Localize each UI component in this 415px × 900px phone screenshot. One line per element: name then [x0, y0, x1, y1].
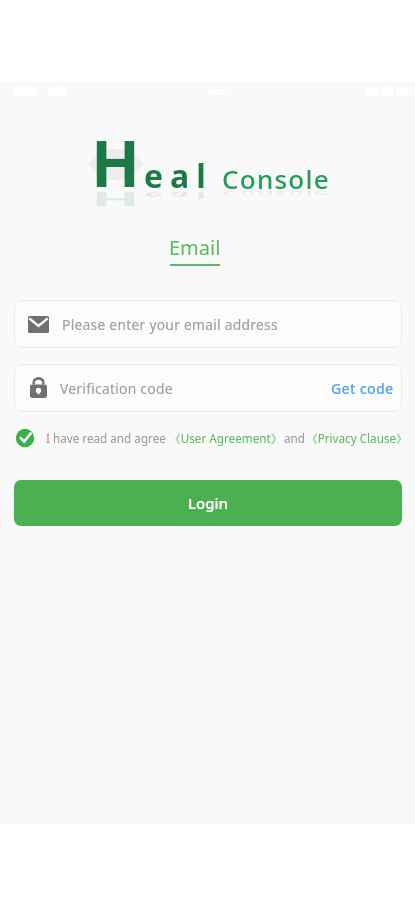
button[interactable]: Please enter your email address	[14, 300, 402, 348]
staticText: H	[91, 186, 140, 212]
button[interactable]: 《User Agreement》	[169, 430, 283, 446]
button[interactable]: 《Privacy Clause》	[306, 430, 408, 446]
staticText: 《Privacy Clause》	[306, 430, 408, 446]
staticText: I have read and agree	[46, 430, 166, 446]
button[interactable]	[15, 428, 35, 448]
staticText: Please enter your email address	[62, 315, 278, 334]
button[interactable]: Verification code	[14, 364, 402, 412]
staticText: and	[284, 430, 305, 446]
staticText: Console	[222, 161, 330, 196]
staticText: eal	[144, 154, 213, 198]
staticText: Console	[222, 189, 330, 200]
staticText: H	[91, 119, 140, 206]
staticText: Get code	[331, 379, 394, 398]
staticText: eal	[144, 189, 213, 202]
staticText: 《User Agreement》	[169, 430, 283, 446]
staticText: Email	[169, 234, 221, 261]
staticText: Verification code	[60, 379, 173, 398]
button[interactable]: Login	[14, 480, 402, 526]
staticText: Login	[188, 493, 228, 513]
button[interactable]: Email	[159, 230, 231, 270]
button[interactable]: Get code	[331, 379, 394, 398]
